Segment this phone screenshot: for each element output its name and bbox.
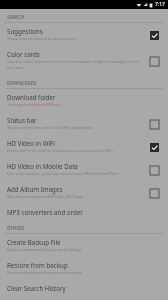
staticText: Add Album Images <box>7 185 63 193</box>
button[interactable]: HD Video in Mobile Data <box>0 158 168 181</box>
staticText: DOWNLOADS <box>7 80 37 86</box>
staticText: Color cards <box>7 50 40 58</box>
staticText: Create Backup File <box>7 238 61 246</box>
staticText: Download folder <box>7 93 56 101</box>
staticText: /storage/emulated/0/Music <box>7 102 61 108</box>
staticText: SEARCH <box>7 14 25 20</box>
button[interactable]: Create Backup File <box>0 234 168 257</box>
button[interactable]: HD Video in Mobile Data <box>147 163 161 177</box>
staticText: Status bar <box>7 116 37 124</box>
button[interactable]: HD Video in WiFi <box>147 140 161 154</box>
button[interactable]: HD Video in WiFi <box>0 135 168 158</box>
button[interactable]: Status bar <box>0 112 168 135</box>
button[interactable]: Color cards <box>0 46 168 75</box>
staticText: Suggestions <box>7 27 43 35</box>
staticText: Add album image to MP3 file, ID3 Tags <box>7 194 83 200</box>
button[interactable]: Suggestions <box>147 28 161 42</box>
staticText: Download high quality videos when connec… <box>7 148 114 154</box>
staticText: Use the most dominant color in thumbnail… <box>7 59 141 71</box>
button[interactable]: Suggestions <box>0 23 168 46</box>
staticText: Show conversion status for MP3 downloads <box>7 125 93 131</box>
staticText: Show related keywords as you type <box>7 36 76 42</box>
staticText: Backup download history and settings <box>7 247 83 253</box>
button[interactable]: Add Album Images <box>0 181 168 204</box>
button[interactable]: Clear Search History <box>0 280 168 296</box>
button[interactable]: Restore from backup <box>0 257 168 280</box>
staticText: HD Video in WiFi <box>7 139 55 147</box>
button[interactable]: Add Album Images <box>147 186 161 200</box>
staticText: 7:17 <box>155 1 165 8</box>
button[interactable]: Status bar <box>147 117 161 131</box>
staticText: Use with caution, you may exceed your Mo… <box>7 171 119 177</box>
button[interactable]: MP3 converters and order <box>0 204 168 220</box>
staticText: MP3 converters and order <box>7 208 83 216</box>
button[interactable]: Download folder <box>0 89 168 112</box>
staticText: Restore download history and settings <box>7 270 83 276</box>
staticText: OTHERS <box>7 225 25 231</box>
staticText: Clear Search History <box>7 284 66 292</box>
staticText: HD Video in Mobile Data <box>7 162 78 170</box>
staticText: Restore from backup <box>7 261 68 269</box>
button[interactable]: Color cards <box>147 54 161 68</box>
